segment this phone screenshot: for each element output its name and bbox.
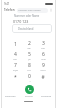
button[interactable]: 6 [36,50,50,61]
staticText: 2 [28,40,31,47]
button[interactable]: 1 [8,39,22,50]
staticText: ABC [27,47,31,50]
staticText: 0170 123 [13,19,29,24]
staticText: JKL [28,58,31,61]
staticText: 9:41 [4,2,10,6]
staticText: 1 [14,41,17,48]
staticText: Zuletzt [25,94,33,97]
staticText: TUV [27,69,31,72]
staticText: Nummer oder Name [14,14,40,18]
staticText: GHI [13,58,17,61]
staticText: 7 [14,62,17,69]
staticText: * [14,74,17,81]
button[interactable]: Zuletzt [25,94,33,97]
button[interactable]: Nummer oder Namen suchen [17,8,48,13]
staticText: PQRS [13,69,18,72]
button[interactable]: 2 [22,39,36,50]
staticText: 4 [14,51,17,58]
staticText: + [29,80,31,83]
staticText: 0 [28,73,31,80]
staticText: 9 [42,62,45,69]
button[interactable]: Kontakte [41,94,52,97]
button[interactable]: More options [49,8,53,12]
staticText: MNO [41,58,46,61]
staticText: DEF [41,47,45,50]
button[interactable]: 7 [8,61,22,72]
staticText: Deutschland [18,27,34,31]
button[interactable]: Deutschland [12,24,52,33]
staticText: 5 [28,51,31,58]
staticText: # [41,74,45,81]
button[interactable]: 3 [36,39,50,50]
button[interactable]: 5 [22,50,36,61]
staticText: 6 [42,51,45,58]
staticText: Favoriten [5,94,16,97]
staticText: Telefon [4,8,15,12]
staticText: Kontakte [41,94,52,97]
button[interactable]: Call [25,85,34,94]
button[interactable]: # [36,72,50,83]
button[interactable]: 4 [8,50,22,61]
button[interactable]: * [8,72,22,83]
button[interactable]: 9 [36,61,50,72]
button[interactable]: Favoriten [5,94,16,97]
button[interactable]: 8 [22,61,36,72]
staticText: WXYZ [40,69,46,72]
staticText: 8 [28,62,31,69]
staticText: Nummer oder Namen suchen [18,9,48,12]
staticText: 3 [42,40,45,47]
button[interactable]: 0 [22,72,36,83]
